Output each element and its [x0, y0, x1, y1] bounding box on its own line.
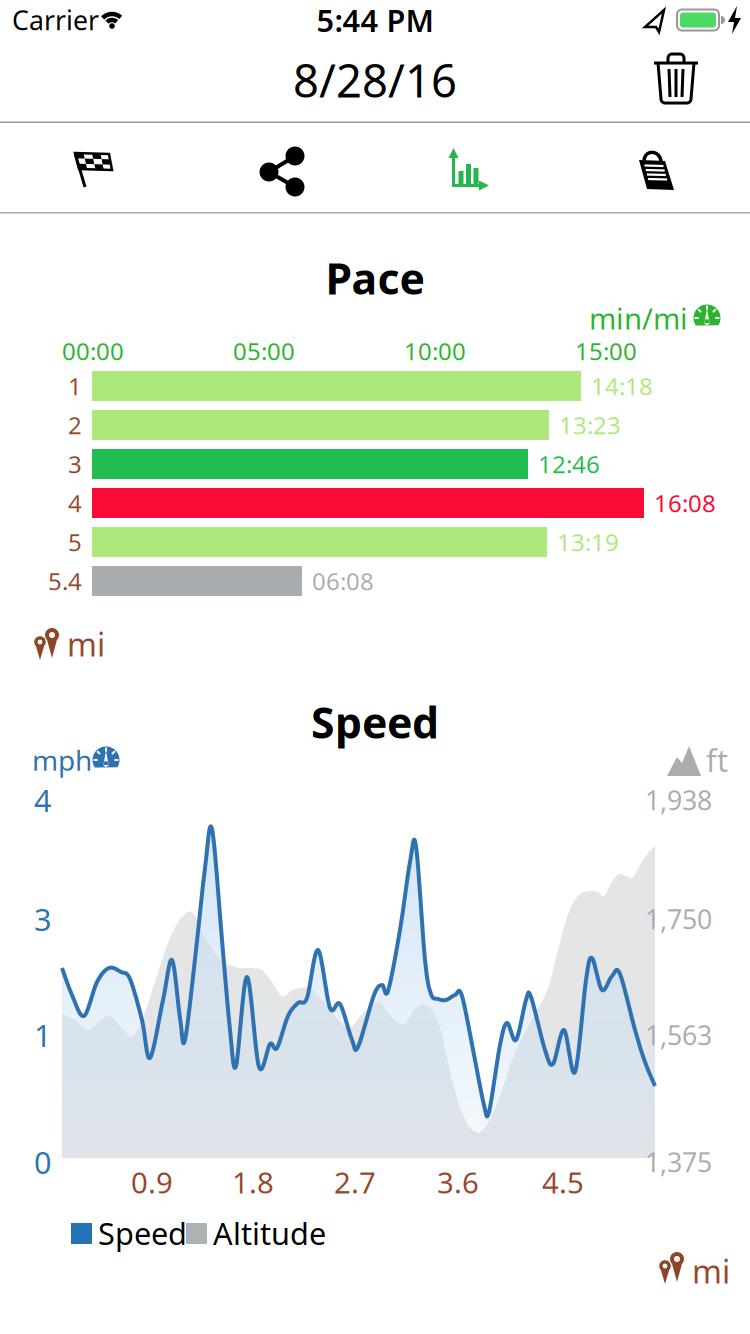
staticText: 5 — [68, 526, 82, 558]
staticText: 1,938 — [645, 782, 712, 818]
staticText: 05:00 — [233, 335, 295, 367]
staticText: min/mi — [589, 298, 688, 337]
staticText: 13:19 — [557, 526, 619, 558]
staticText: 1 — [34, 1015, 52, 1055]
staticText: 4 — [68, 487, 82, 519]
button[interactable]: Charts — [375, 123, 562, 213]
staticText: Altitude — [213, 1213, 326, 1253]
staticText: 16:08 — [654, 487, 716, 519]
button[interactable]: Share — [187, 123, 375, 213]
staticText: 2 — [68, 409, 82, 441]
staticText: 12:46 — [538, 448, 600, 480]
staticText: Speed — [98, 1213, 187, 1253]
staticText: 2.7 — [334, 1162, 376, 1201]
staticText: 1.8 — [232, 1162, 274, 1201]
staticText: Speed — [311, 694, 439, 750]
staticText: 5:44 PM — [316, 0, 433, 40]
staticText: 0.9 — [131, 1162, 173, 1201]
staticText: 1,375 — [645, 1144, 712, 1180]
button[interactable]: Notes — [562, 123, 750, 213]
button[interactable]: Delete — [646, 49, 706, 111]
staticText: 15:00 — [575, 335, 637, 367]
staticText: mi — [692, 1250, 730, 1292]
staticText: 5.4 — [48, 565, 82, 597]
staticText: Pace — [325, 250, 424, 306]
staticText: 1 — [68, 370, 82, 402]
staticText: 4.5 — [542, 1162, 584, 1201]
staticText: 3 — [34, 899, 52, 939]
staticText: Carrier — [12, 2, 99, 38]
staticText: 14:18 — [591, 370, 653, 402]
staticText: ft — [706, 740, 728, 780]
staticText: 0 — [34, 1142, 52, 1182]
staticText: 8/28/16 — [293, 50, 457, 110]
staticText: mi — [67, 623, 105, 665]
staticText: 00:00 — [62, 335, 124, 367]
staticText: 4 — [34, 780, 52, 820]
staticText: 3.6 — [437, 1162, 479, 1201]
staticText: 1,750 — [645, 901, 712, 937]
staticText: 1,563 — [645, 1017, 712, 1053]
staticText: 3 — [68, 448, 82, 480]
staticText: 10:00 — [404, 335, 466, 367]
staticText: 13:23 — [559, 409, 621, 441]
staticText: 06:08 — [312, 565, 374, 597]
staticText: mph — [32, 741, 92, 779]
button[interactable]: Finish — [0, 123, 187, 213]
